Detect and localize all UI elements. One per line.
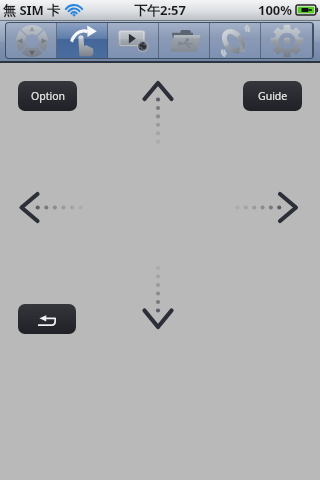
button[interactable]: Settings (261, 23, 312, 58)
button[interactable]: Back (18, 304, 76, 334)
button[interactable]: Direction pad (0, 0, 320, 480)
button[interactable]: Guide (243, 81, 302, 111)
staticText: Guide (258, 89, 288, 103)
button[interactable]: Media (108, 23, 159, 58)
staticText: Option (31, 89, 65, 103)
button[interactable]: Option (18, 81, 77, 111)
staticText: 下午2:57 (134, 1, 186, 19)
button[interactable]: Touchpad (57, 23, 108, 58)
button[interactable]: Files (159, 23, 210, 58)
staticText: 100% (258, 1, 293, 19)
staticText: 無 SIM 卡 (3, 1, 61, 19)
button[interactable]: D-pad (6, 23, 57, 58)
button[interactable]: Antenna (210, 23, 261, 58)
